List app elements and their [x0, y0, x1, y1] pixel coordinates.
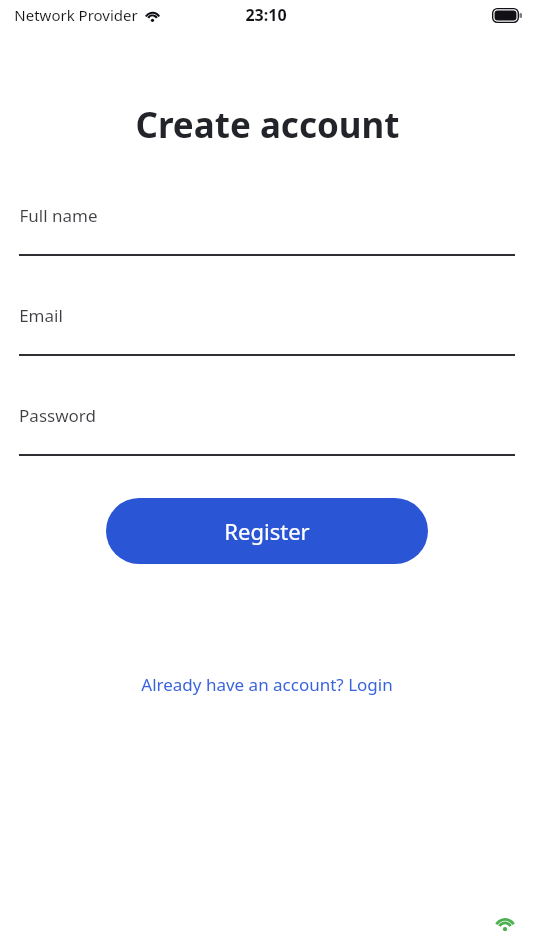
staticText: Full name	[19, 204, 98, 227]
other: Wi-Fi connected	[492, 910, 518, 936]
button[interactable]: Register	[106, 498, 428, 564]
staticText: Email	[19, 304, 63, 327]
staticText: Register	[224, 516, 310, 546]
button[interactable]: Already have an account? Login	[0, 668, 534, 700]
staticText: Network Provider	[14, 5, 138, 25]
staticText: Password	[19, 404, 96, 427]
staticText: Already have an account? Login	[141, 673, 393, 696]
staticText: Create account	[135, 101, 400, 149]
staticText: 23:10	[245, 4, 287, 26]
